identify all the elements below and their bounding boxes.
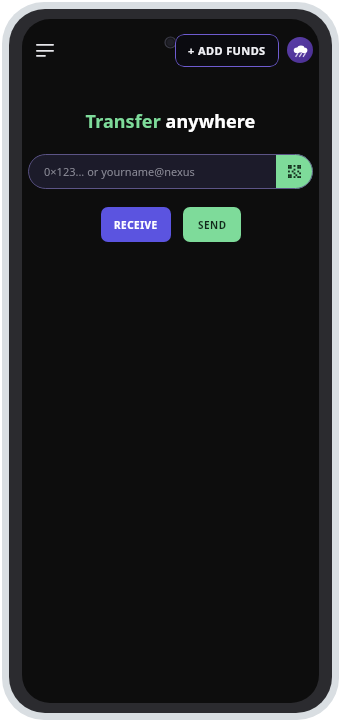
staticText: Transfer anywhere — [22, 109, 319, 134]
button[interactable]: Menu — [28, 33, 62, 67]
button[interactable]: Scan QR code — [276, 154, 313, 189]
staticText: RECEIVE — [114, 218, 158, 232]
button[interactable]: + ADD FUNDS — [175, 34, 279, 67]
button[interactable]: SEND — [183, 207, 241, 242]
button[interactable]: 0×123... or yourname@nexus — [28, 154, 313, 189]
staticText: SEND — [198, 218, 227, 232]
staticText: + ADD FUNDS — [188, 43, 266, 58]
staticText: 0×123... or yourname@nexus — [44, 164, 276, 179]
button[interactable]: Profile — [287, 37, 313, 63]
button[interactable]: RECEIVE — [101, 207, 171, 242]
